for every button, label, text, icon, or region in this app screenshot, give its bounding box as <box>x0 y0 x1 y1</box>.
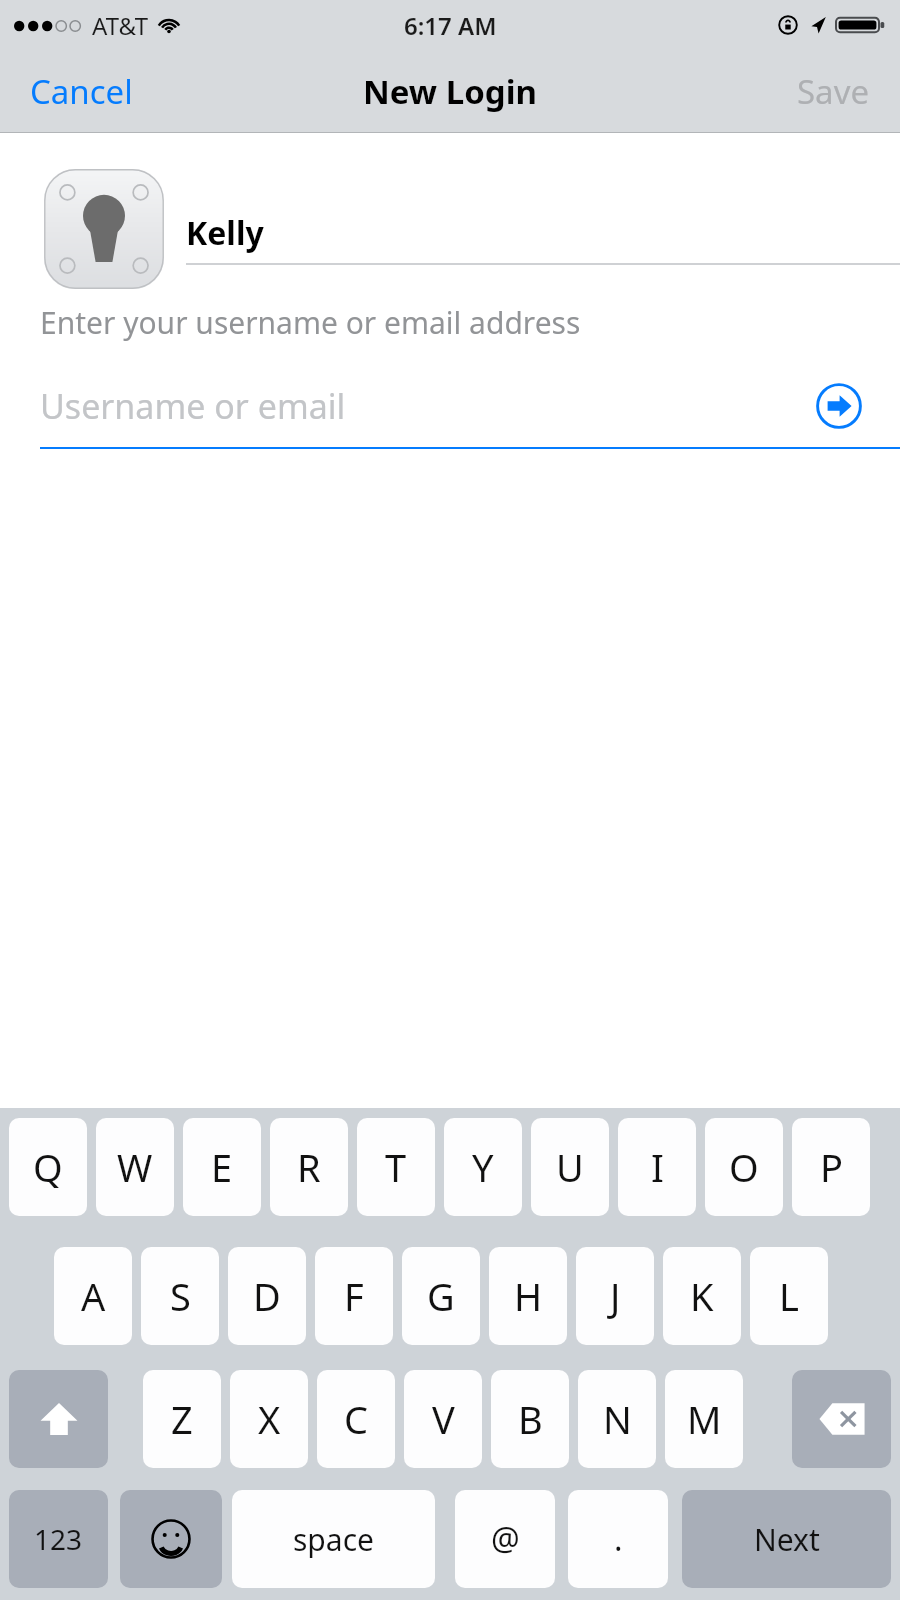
button[interactable]: N <box>578 1370 656 1468</box>
staticText: AT&T <box>92 9 148 42</box>
button[interactable]: E <box>183 1118 261 1216</box>
staticText: Kelly <box>186 211 264 255</box>
button[interactable]: W <box>96 1118 174 1216</box>
staticText: Username or email <box>40 383 346 429</box>
staticText: space <box>293 1519 374 1560</box>
button[interactable]: M <box>665 1370 743 1468</box>
button[interactable]: T <box>357 1118 435 1216</box>
staticText: Q <box>33 1141 63 1193</box>
button[interactable]: G <box>402 1247 480 1345</box>
staticText: C <box>344 1393 369 1445</box>
button[interactable]: Cancel <box>0 55 163 128</box>
button[interactable]: space <box>232 1490 435 1588</box>
staticText: V <box>432 1393 455 1445</box>
button[interactable]: Q <box>9 1118 87 1216</box>
button[interactable]: Choose icon <box>44 169 164 289</box>
button[interactable] <box>9 1370 108 1468</box>
staticText: S <box>170 1270 191 1322</box>
staticText: P <box>820 1141 843 1193</box>
staticText: Cancel <box>30 69 133 114</box>
staticText: 6:17 AM <box>404 9 497 42</box>
staticText: I <box>651 1141 664 1193</box>
staticText: J <box>610 1270 621 1322</box>
button[interactable]: @ <box>455 1490 555 1588</box>
button[interactable]: Backspace <box>792 1370 891 1468</box>
button[interactable]: P <box>792 1118 870 1216</box>
button[interactable]: V <box>404 1370 482 1468</box>
button[interactable]: Emoji <box>120 1490 222 1588</box>
button[interactable]: A <box>54 1247 132 1345</box>
button[interactable]: Username or email <box>0 375 900 437</box>
button[interactable]: R <box>270 1118 348 1216</box>
button[interactable]: X <box>230 1370 308 1468</box>
button[interactable]: C <box>317 1370 395 1468</box>
staticText: Y <box>472 1141 494 1193</box>
staticText: W <box>117 1141 153 1193</box>
staticText: G <box>427 1270 455 1322</box>
staticText: K <box>690 1270 714 1322</box>
button[interactable]: . <box>568 1490 668 1588</box>
staticText: O <box>729 1141 759 1193</box>
staticText: Enter your username or email address <box>40 302 581 343</box>
button[interactable]: Y <box>444 1118 522 1216</box>
staticText: . <box>614 1517 623 1561</box>
staticText: N <box>603 1393 632 1445</box>
button[interactable]: B <box>491 1370 569 1468</box>
button[interactable]: 123 <box>9 1490 108 1588</box>
staticText: X <box>258 1393 281 1445</box>
staticText: Z <box>171 1393 193 1445</box>
staticText: E <box>211 1141 233 1193</box>
staticText: D <box>253 1270 281 1322</box>
staticText: R <box>297 1141 321 1193</box>
button[interactable]: D <box>228 1247 306 1345</box>
button[interactable]: O <box>705 1118 783 1216</box>
button[interactable]: F <box>315 1247 393 1345</box>
button[interactable]: Save <box>767 55 900 128</box>
staticText: H <box>514 1270 543 1322</box>
staticText: @ <box>491 1517 520 1561</box>
staticText: M <box>687 1393 722 1445</box>
button[interactable]: K <box>663 1247 741 1345</box>
button[interactable]: L <box>750 1247 828 1345</box>
button[interactable]: J <box>576 1247 654 1345</box>
staticText: U <box>556 1141 584 1193</box>
button[interactable]: Next <box>682 1490 891 1588</box>
button[interactable]: I <box>618 1118 696 1216</box>
staticText: F <box>344 1270 364 1322</box>
button[interactable]: U <box>531 1118 609 1216</box>
staticText: Next <box>754 1519 820 1560</box>
staticText: 123 <box>34 1520 83 1558</box>
staticText: T <box>385 1141 407 1193</box>
button[interactable]: H <box>489 1247 567 1345</box>
staticText: A <box>81 1270 106 1322</box>
staticText: Save <box>797 69 870 114</box>
button[interactable]: S <box>141 1247 219 1345</box>
staticText: B <box>518 1393 543 1445</box>
button[interactable]: Z <box>143 1370 221 1468</box>
staticText: New Login <box>363 69 537 114</box>
staticText: L <box>779 1270 799 1322</box>
button[interactable]: Continue <box>816 383 862 429</box>
